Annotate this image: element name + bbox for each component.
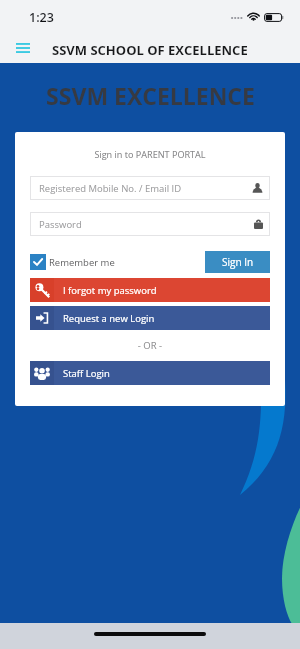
staticText: 1:23	[29, 9, 54, 26]
staticText: Password	[39, 218, 82, 231]
staticText: SSVM SCHOOL OF EXCELLENCE	[52, 41, 248, 59]
staticText: Sign In	[222, 255, 254, 269]
button[interactable]: Registered Mobile No. / Email ID	[30, 176, 270, 200]
staticText: Remember me	[49, 256, 115, 269]
staticText: Request a new Login	[63, 312, 155, 325]
staticText: Staff Login	[63, 367, 110, 380]
staticText: I forgot my password	[63, 284, 157, 297]
staticText: Sign in to PARENT PORTAL	[15, 148, 285, 160]
staticText: - OR -	[15, 339, 285, 352]
button[interactable]: Request a new Login	[30, 306, 270, 330]
button[interactable]: Remember me	[30, 254, 115, 270]
button[interactable]: Password	[30, 212, 270, 236]
button[interactable]: I forgot my password	[30, 278, 270, 302]
button[interactable]: Staff Login	[30, 361, 270, 385]
button[interactable]: Sign In	[205, 251, 270, 273]
button[interactable]: Open navigation menu	[10, 35, 36, 61]
staticText: SSVM EXCELLENCE	[46, 80, 255, 110]
staticText: Registered Mobile No. / Email ID	[39, 182, 182, 195]
